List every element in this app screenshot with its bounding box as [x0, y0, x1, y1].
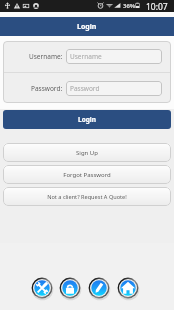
- button[interactable]: Forgot Password: [3, 165, 171, 184]
- button[interactable]: Request a quote: [86, 275, 112, 301]
- staticText: 36%: [123, 2, 136, 10]
- button[interactable]: Username: [66, 49, 162, 64]
- staticText: Login: [77, 22, 97, 32]
- staticText: Forgot Password: [63, 171, 111, 179]
- staticText: Password:: [31, 84, 63, 93]
- staticText: Sign Up: [76, 149, 98, 157]
- staticText: Username:: [29, 52, 63, 61]
- button[interactable]: Login: [57, 275, 83, 301]
- staticText: Not a client? Request A Quote!: [47, 193, 127, 201]
- button[interactable]: Login: [0, 17, 174, 36]
- button[interactable]: Services: [29, 275, 55, 301]
- button[interactable]: Password: [66, 81, 162, 96]
- button[interactable]: Not a client? Request A Quote!: [3, 187, 171, 206]
- staticText: 10:07: [146, 1, 168, 13]
- button[interactable]: Home: [115, 275, 141, 301]
- button[interactable]: Sign Up: [3, 143, 171, 162]
- button[interactable]: Login: [3, 110, 171, 129]
- staticText: Username: [70, 52, 102, 61]
- staticText: Login: [78, 115, 96, 124]
- staticText: Password: [70, 84, 100, 93]
